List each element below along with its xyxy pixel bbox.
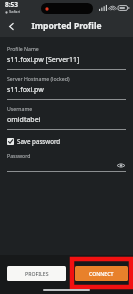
staticText: PROFILES xyxy=(25,270,49,277)
button[interactable]: PROFILES xyxy=(7,266,66,281)
staticText: CONNECT xyxy=(89,270,114,277)
staticText: Username xyxy=(7,105,33,112)
button[interactable]: Back xyxy=(0,15,22,37)
staticText: Imported Profile xyxy=(31,20,102,32)
staticText: Profile Name xyxy=(7,45,39,52)
button[interactable]: Save password xyxy=(0,130,133,147)
staticText: 8:53 xyxy=(5,0,18,9)
button[interactable]: CONNECT xyxy=(75,266,128,281)
staticText: s11.foxi.pw xyxy=(7,85,44,95)
staticText: s11.foxi.pw [Server11] xyxy=(7,55,80,65)
staticText: Save password xyxy=(17,137,61,145)
staticText: Safari xyxy=(9,9,21,15)
button[interactable]: Profile Name xyxy=(0,40,133,70)
staticText: omidtabei xyxy=(7,115,41,125)
staticText: Server Hostname (locked) xyxy=(7,75,70,82)
staticText: Password xyxy=(7,152,31,159)
button[interactable]: Server Hostname (locked) xyxy=(0,70,133,100)
button[interactable]: Show password xyxy=(115,160,126,171)
button[interactable]: Username xyxy=(0,100,133,130)
